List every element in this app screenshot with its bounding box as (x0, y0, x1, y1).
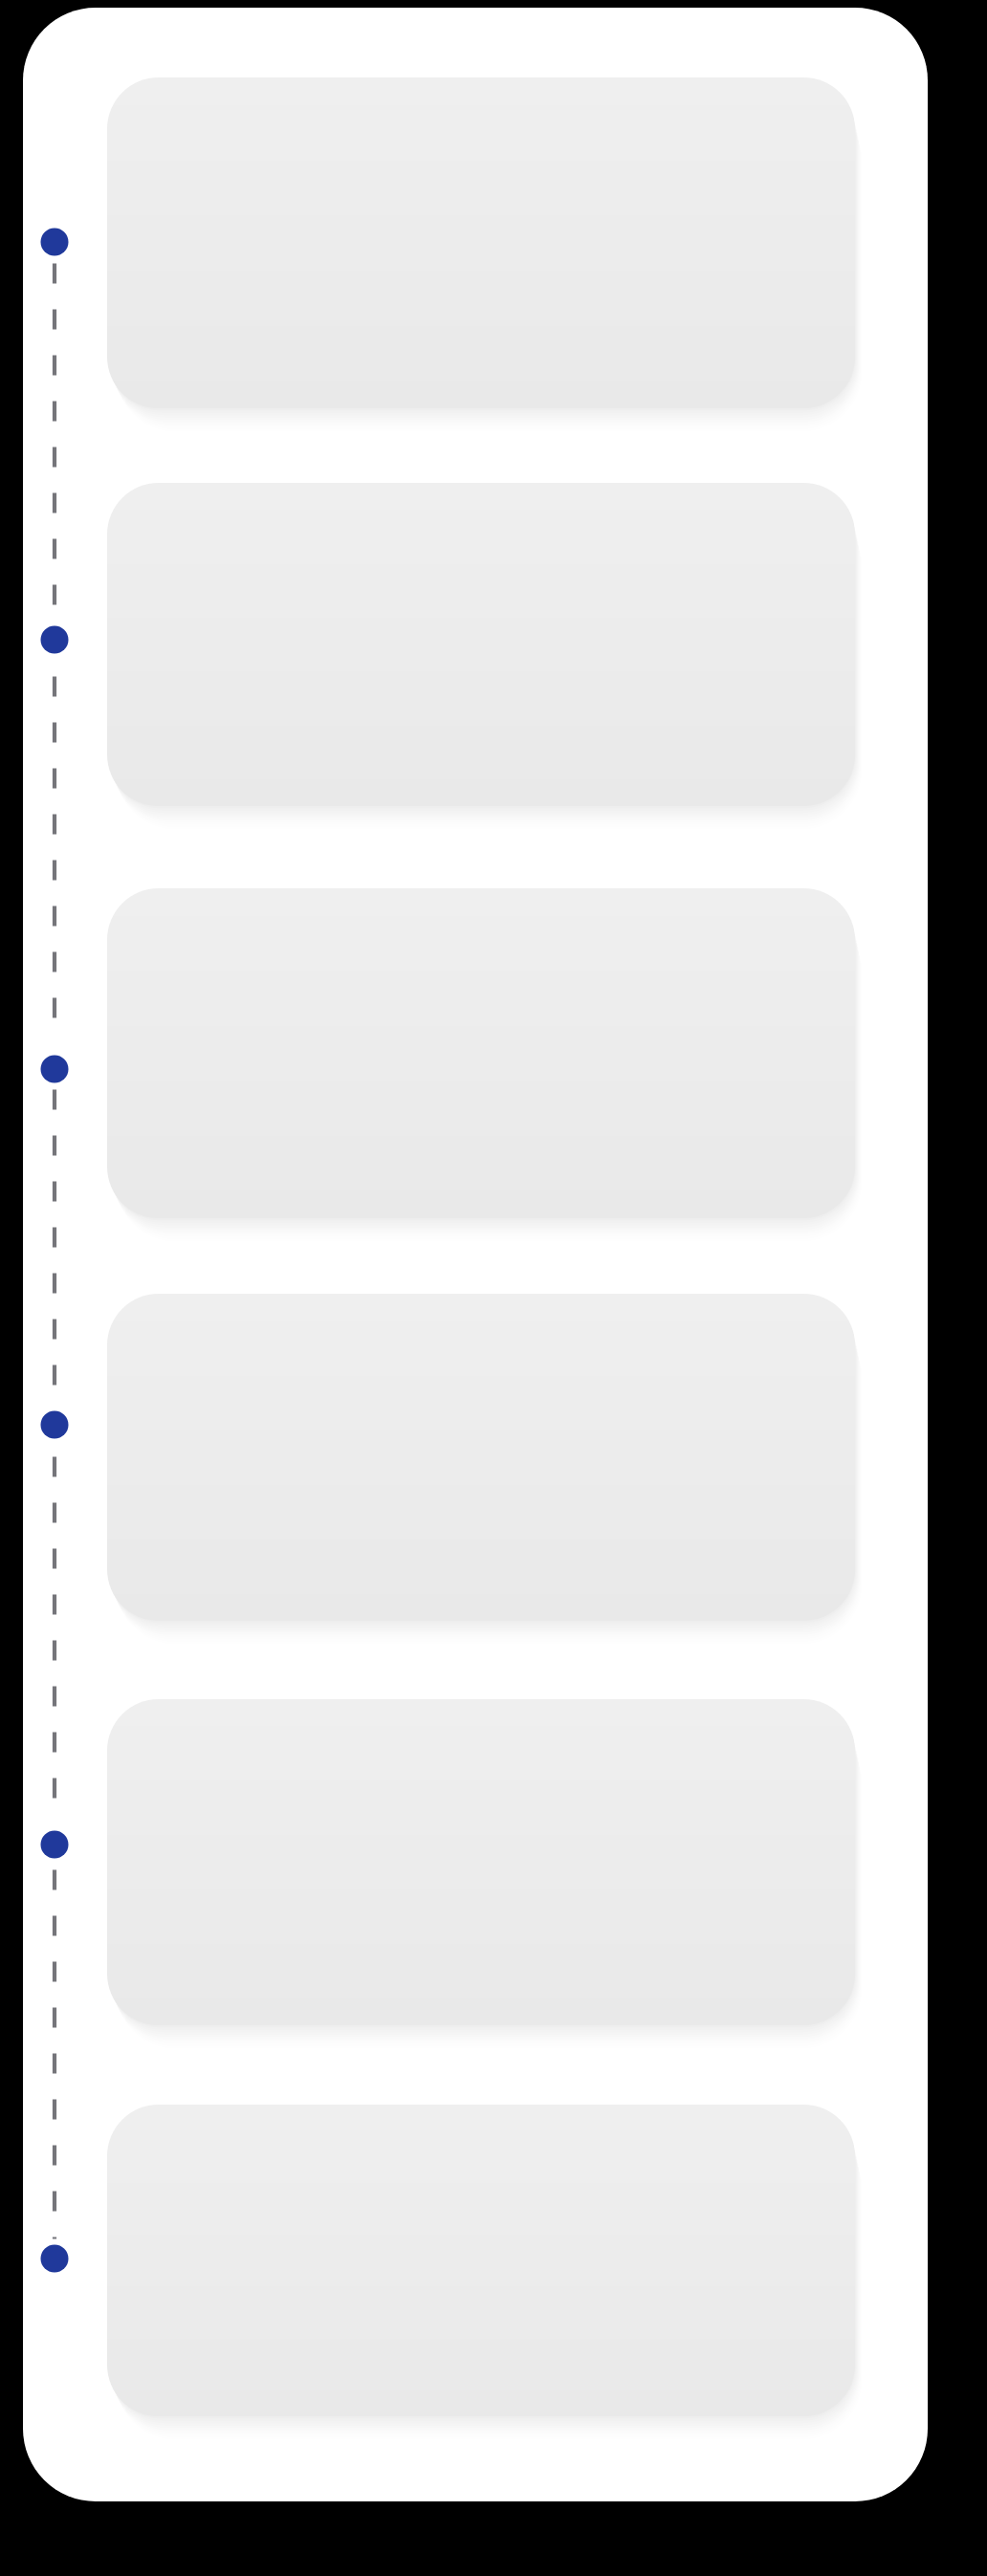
button[interactable]: Milestone 6 (40, 2244, 68, 2272)
button[interactable]: Milestone 2 (40, 625, 68, 653)
button[interactable]: Milestone 4 (40, 1410, 68, 1438)
button[interactable]: Milestone 5 (40, 1830, 68, 1858)
button[interactable]: Milestone 1 (40, 228, 68, 255)
button[interactable]: Milestone 3 (40, 1055, 68, 1082)
